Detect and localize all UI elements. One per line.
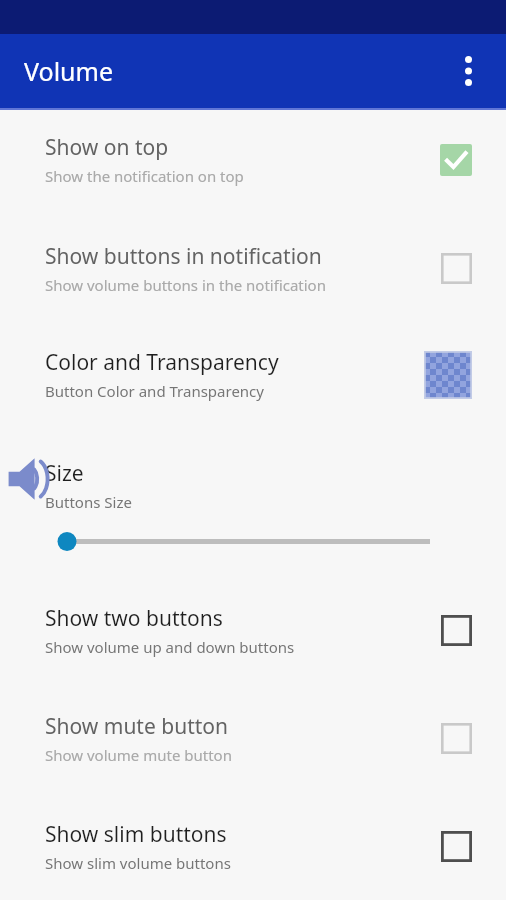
button[interactable]: Unchecked checkbox xyxy=(441,615,472,646)
staticText: Show volume up and down buttons xyxy=(45,637,295,657)
button[interactable]: Color and transparency swatch xyxy=(424,351,472,399)
button[interactable]: Volume xyxy=(6,453,58,505)
button[interactable]: Checked checkbox xyxy=(440,144,472,176)
button[interactable]: Size xyxy=(0,443,506,555)
staticText: Show two buttons xyxy=(45,604,223,633)
staticText: Show slim buttons xyxy=(45,820,227,849)
button[interactable]: Show slim buttons xyxy=(0,813,506,880)
staticText: Show the notification on top xyxy=(45,166,244,186)
button[interactable]: Color and Transparency xyxy=(0,341,506,408)
button[interactable]: Unchecked checkbox xyxy=(441,253,472,284)
button[interactable]: Show on top xyxy=(0,126,506,193)
staticText: Show slim volume buttons xyxy=(45,853,231,873)
staticText: Button Color and Transparency xyxy=(45,381,264,401)
staticText: Show volume mute button xyxy=(45,745,232,765)
staticText: Size xyxy=(45,459,84,488)
button[interactable]: Unchecked checkbox xyxy=(441,723,472,754)
button[interactable]: Buttons size slider xyxy=(0,528,506,555)
staticText: Show volume buttons in the notification xyxy=(45,275,326,295)
button[interactable]: Show two buttons xyxy=(0,597,506,664)
staticText: Volume xyxy=(24,54,114,88)
button[interactable]: More options xyxy=(444,47,492,95)
staticText: Show mute button xyxy=(45,712,228,741)
staticText: Show buttons in notification xyxy=(45,242,322,271)
button[interactable]: Unchecked checkbox xyxy=(441,831,472,862)
button[interactable]: Show mute button xyxy=(0,705,506,772)
staticText: Buttons Size xyxy=(45,492,132,512)
button[interactable]: Show buttons in notification xyxy=(0,235,506,302)
staticText: Color and Transparency xyxy=(45,348,279,377)
staticText: Show on top xyxy=(45,133,169,162)
